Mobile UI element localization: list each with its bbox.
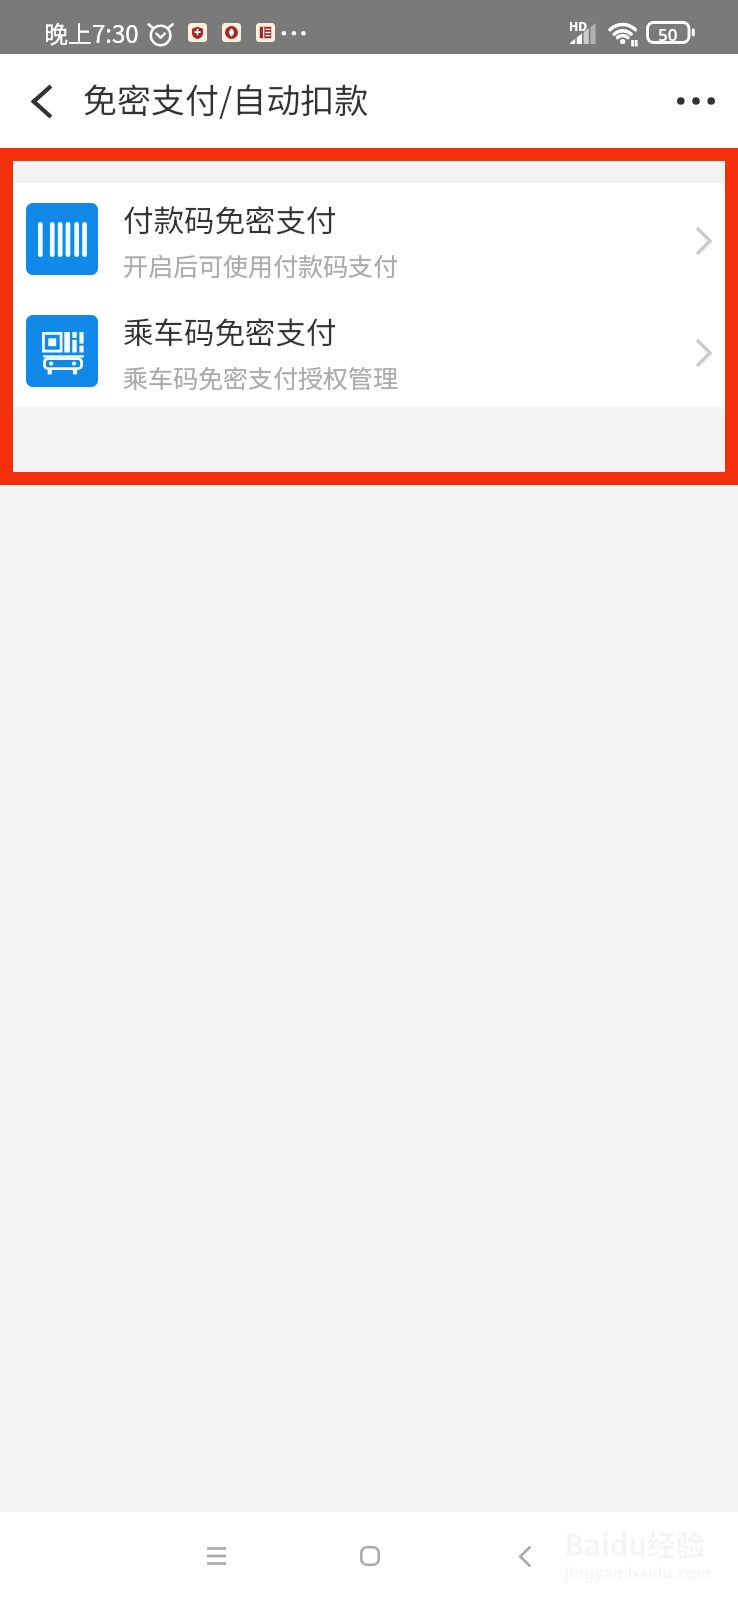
button[interactable]: Home: [320, 1512, 420, 1600]
button[interactable]: More options: [654, 54, 738, 148]
staticText: 晚上7:30: [44, 15, 139, 50]
button[interactable]: Back: [475, 1512, 575, 1600]
staticText: 免密支付/自动扣款: [83, 74, 369, 123]
button[interactable]: Recent apps: [166, 1512, 266, 1600]
staticText: Baidu经验: [564, 1522, 705, 1564]
staticText: 50: [658, 23, 678, 46]
staticText: 乘车码免密支付: [123, 309, 337, 353]
button[interactable]: 付款码免密支付: [0, 183, 738, 295]
button[interactable]: 乘车码免密支付: [0, 295, 738, 407]
staticText: 付款码免密支付: [123, 197, 337, 241]
staticText: 乘车码免密支付授权管理: [123, 359, 399, 395]
staticText: 开启后可使用付款码支付: [123, 247, 399, 283]
staticText: jingyan.baidu.com: [564, 1562, 712, 1584]
staticText: HD: [569, 18, 587, 34]
button[interactable]: Back: [0, 54, 82, 148]
